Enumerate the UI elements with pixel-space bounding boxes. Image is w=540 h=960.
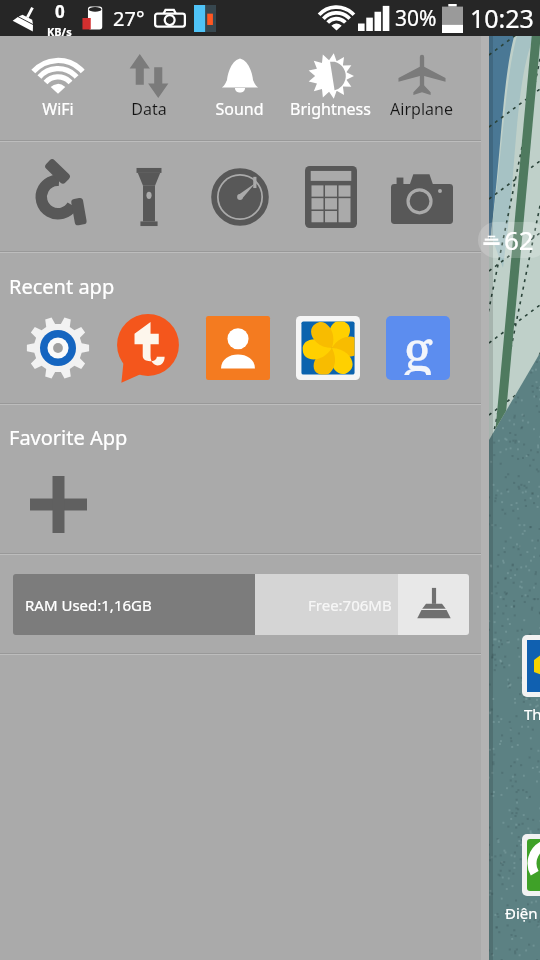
- button[interactable]: Brightness: [285, 36, 376, 140]
- staticText: Brightness: [290, 98, 371, 120]
- staticText: Free:706MB: [308, 595, 392, 615]
- button[interactable]: Settings: [24, 314, 92, 382]
- button[interactable]: Contacts: [204, 314, 272, 382]
- staticText: Data: [131, 98, 167, 120]
- staticText: g: [403, 316, 434, 375]
- staticText: Th: [524, 704, 540, 724]
- staticText: 30%: [395, 4, 437, 33]
- staticText: WiFi: [42, 98, 74, 120]
- button[interactable]: Clean memory: [398, 574, 469, 635]
- button[interactable]: Free:706MB: [255, 574, 398, 635]
- button[interactable]: Timer: [194, 142, 285, 251]
- button[interactable]: Calculator: [285, 142, 376, 251]
- staticText: Recent app: [9, 273, 115, 300]
- button[interactable]: Phone: [12, 142, 103, 251]
- button[interactable]: RAM Used:1,16GB: [13, 574, 255, 635]
- staticText: Airplane: [390, 98, 453, 120]
- staticText: Sound: [215, 98, 264, 120]
- staticText: KB/s: [47, 24, 72, 36]
- staticText: 27°: [113, 5, 145, 32]
- button[interactable]: Gallery: [294, 314, 362, 382]
- button[interactable]: WiFi: [12, 36, 103, 140]
- button[interactable]: Data: [103, 36, 194, 140]
- staticText: 10:23: [470, 1, 534, 35]
- button[interactable]: Add favorite app: [22, 468, 94, 540]
- button[interactable]: Flashlight: [103, 142, 194, 251]
- staticText: 62%: [504, 222, 540, 258]
- button[interactable]: Battery 62 percent: [483, 222, 540, 258]
- staticText: Favorite App: [9, 424, 128, 451]
- button[interactable]: Airplane: [376, 36, 467, 140]
- button[interactable]: Tango: [114, 314, 182, 382]
- staticText: 0: [55, 0, 65, 23]
- button[interactable]: Camera: [376, 142, 467, 251]
- button[interactable]: Sound: [194, 36, 285, 140]
- staticText: Điện: [505, 903, 538, 923]
- staticText: RAM Used:1,16GB: [25, 595, 152, 615]
- button[interactable]: Google: [384, 314, 452, 382]
